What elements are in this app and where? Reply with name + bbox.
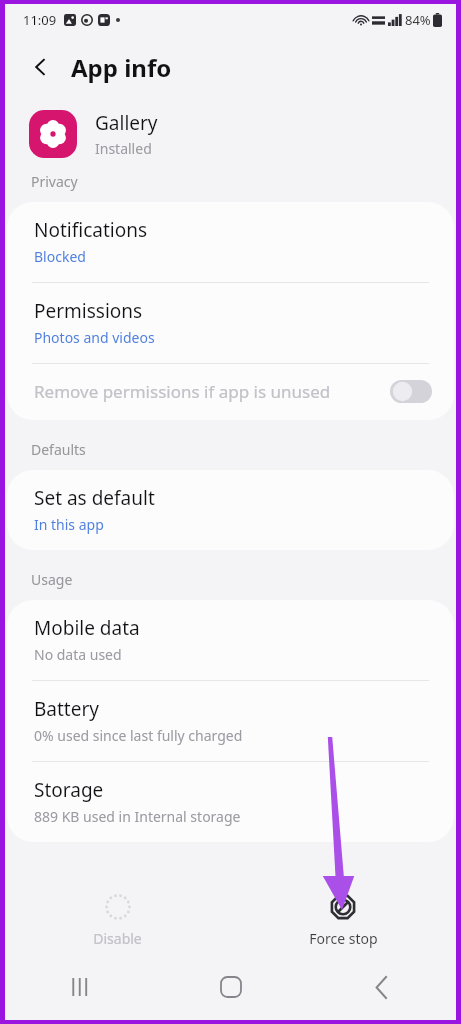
button[interactable]: Remove permissions if app is unused — [7, 364, 454, 420]
staticText: Force stop — [309, 929, 378, 948]
button[interactable]: Back — [306, 954, 456, 1020]
button[interactable]: Gallery — [29, 110, 456, 158]
button[interactable]: Storage — [7, 762, 454, 842]
staticText: Set as default — [34, 485, 155, 511]
staticText: Installed — [95, 139, 152, 158]
other: Force stop — [330, 894, 356, 920]
staticText: Usage — [31, 570, 73, 589]
staticText: Defaults — [31, 440, 86, 459]
staticText: Remove permissions if app is unused — [34, 380, 382, 403]
staticText: Notifications — [34, 217, 148, 243]
button[interactable]: Disable — [5, 884, 230, 954]
staticText: Permissions — [34, 298, 143, 324]
staticText: 11:09 — [23, 11, 57, 29]
staticText: Photos and videos — [34, 328, 155, 347]
staticText: Storage — [34, 777, 104, 803]
other: Disable — [105, 894, 131, 920]
button[interactable]: Battery — [7, 681, 454, 761]
staticText: App info — [71, 51, 172, 84]
staticText: Battery — [34, 696, 99, 722]
button[interactable]: Set as default — [7, 470, 454, 550]
staticText: 889 KB used in Internal storage — [34, 807, 241, 826]
staticText: Mobile data — [34, 615, 140, 641]
staticText: In this app — [34, 515, 104, 534]
staticText: Disable — [93, 929, 142, 948]
staticText: Blocked — [34, 247, 86, 266]
staticText: 84% — [405, 11, 431, 29]
button[interactable]: Force stop — [230, 884, 456, 954]
staticText: Privacy — [31, 172, 78, 191]
staticText: No data used — [34, 645, 122, 664]
button[interactable]: Permissions — [7, 283, 454, 363]
button[interactable]: Home — [156, 954, 306, 1020]
button[interactable]: Notifications — [7, 202, 454, 282]
staticText: Gallery — [95, 110, 158, 136]
staticText: 0% used since last fully charged — [34, 726, 243, 745]
button[interactable]: Back — [21, 47, 61, 87]
button[interactable]: Recents — [5, 954, 156, 1020]
button[interactable]: Mobile data — [7, 600, 454, 680]
